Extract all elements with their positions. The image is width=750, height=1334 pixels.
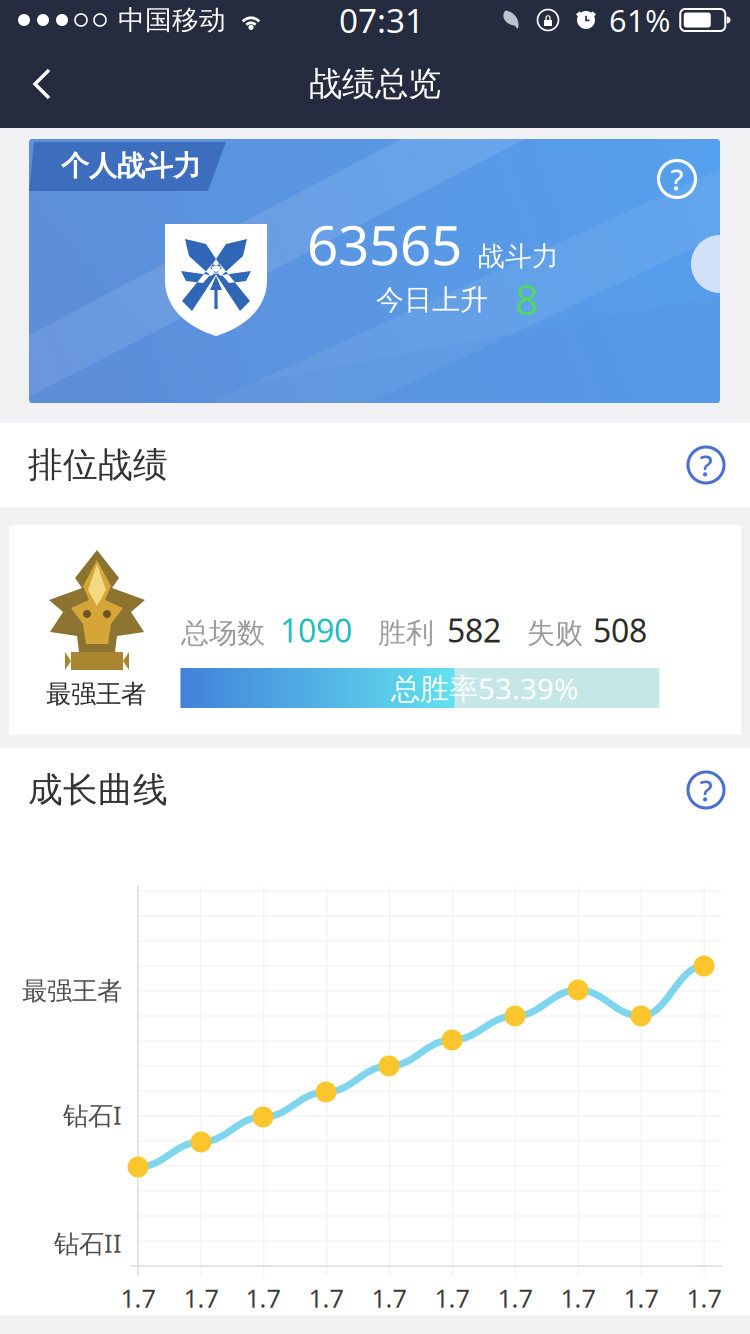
- staticText: 最强王者: [46, 678, 146, 709]
- staticText: 战斗力: [478, 240, 559, 273]
- staticText: 07:31: [339, 0, 424, 42]
- button[interactable]: Help: [652, 154, 701, 203]
- button[interactable]: Help: [680, 439, 732, 491]
- staticText: 1.7: [183, 1281, 218, 1315]
- staticText: 8: [515, 272, 539, 326]
- staticText: 1.7: [434, 1281, 469, 1315]
- staticText: 1.7: [120, 1281, 155, 1315]
- staticText: 个人战斗力: [61, 149, 201, 183]
- staticText: 中国移动: [118, 4, 226, 36]
- staticText: 排位战绩: [28, 444, 168, 486]
- staticText: 总场数: [181, 616, 265, 650]
- staticText: 1.7: [497, 1281, 532, 1315]
- staticText: 最强王者: [22, 975, 122, 1006]
- button[interactable]: Help: [680, 764, 732, 816]
- staticText: ?: [699, 770, 712, 809]
- staticText: 1090: [280, 609, 352, 651]
- button[interactable]: Back: [0, 50, 78, 118]
- staticText: 1.7: [686, 1281, 721, 1315]
- staticText: 1.7: [308, 1281, 343, 1315]
- staticText: 失败: [527, 616, 583, 650]
- staticText: 胜利: [378, 616, 434, 650]
- staticText: 1.7: [245, 1281, 280, 1315]
- staticText: 钻石I: [63, 1098, 122, 1132]
- staticText: 61%: [609, 0, 670, 40]
- staticText: 1.7: [623, 1281, 658, 1315]
- staticText: 总胜率53.39%: [391, 668, 578, 707]
- staticText: 508: [593, 609, 647, 651]
- staticText: 今日上升: [376, 283, 488, 317]
- staticText: 1.7: [371, 1281, 406, 1315]
- staticText: 1.7: [560, 1281, 595, 1315]
- staticText: ?: [670, 159, 683, 198]
- staticText: 战绩总览: [309, 63, 441, 104]
- staticText: 63565: [307, 208, 462, 280]
- staticText: 成长曲线: [28, 769, 168, 811]
- staticText: 582: [447, 609, 501, 651]
- staticText: ?: [699, 445, 712, 484]
- staticText: 钻石II: [54, 1226, 122, 1260]
